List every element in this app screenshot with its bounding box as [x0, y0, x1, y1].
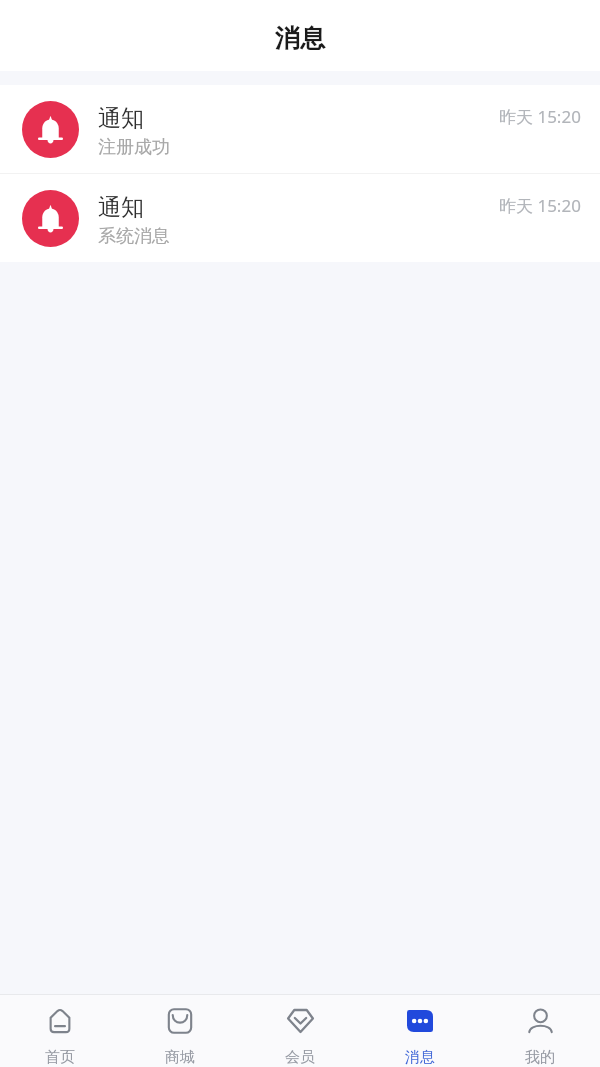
button[interactable]: Membership	[240, 995, 360, 1067]
staticText: 消息	[405, 1048, 435, 1067]
button[interactable]: Shop	[120, 995, 240, 1067]
staticText: 系统消息	[98, 225, 170, 248]
staticText: 昨天 15:20	[499, 105, 581, 128]
staticText: 会员	[285, 1048, 315, 1067]
staticText: 注册成功	[98, 136, 170, 159]
staticText: 昨天 15:20	[499, 194, 581, 217]
staticText: 我的	[525, 1048, 555, 1067]
button[interactable]: Profile	[480, 995, 600, 1067]
button[interactable]: Messages	[360, 995, 480, 1067]
staticText: 通知	[98, 104, 499, 133]
staticText: 商城	[165, 1048, 195, 1067]
staticText: 消息	[275, 23, 325, 54]
button[interactable]: 通知	[0, 174, 600, 262]
staticText: 首页	[45, 1048, 75, 1067]
staticText: 通知	[98, 193, 499, 222]
button[interactable]: Home	[0, 995, 120, 1067]
button[interactable]: 通知	[0, 85, 600, 173]
